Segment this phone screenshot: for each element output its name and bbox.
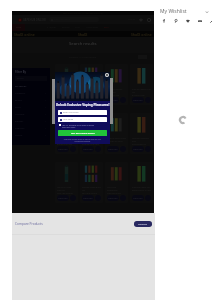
staticText: ShalX xyxy=(78,32,88,37)
staticText: Enter your email xyxy=(63,111,79,114)
button[interactable]: Cart xyxy=(147,18,151,22)
button[interactable]: More options xyxy=(204,9,209,14)
staticText: Add to cart xyxy=(58,197,68,199)
button[interactable]: Add to cart xyxy=(82,195,94,201)
staticText: Rainbow Candy Mix Flavour Bundle Pack Se… xyxy=(57,137,76,146)
button[interactable]: Add to cart xyxy=(132,97,144,103)
button[interactable]: Premium Mesh Coil Replacement 5 Pack xyxy=(130,162,153,203)
button[interactable]: My Wishlist xyxy=(160,8,209,15)
staticText: Add to cart xyxy=(108,99,118,101)
staticText: Add to cart xyxy=(133,99,143,101)
button[interactable]: Enter your email xyxy=(58,110,107,115)
button[interactable]: Compare xyxy=(134,221,152,227)
staticText: FILTER BY xyxy=(15,84,27,87)
staticText: Add to cart xyxy=(58,148,68,150)
staticText: Price xyxy=(15,105,21,108)
button[interactable]: Add to cart xyxy=(107,97,119,103)
button[interactable]: Deluxe Starter Kit With Charger And Coil… xyxy=(80,113,103,154)
button[interactable]: Smooth Classic Tobacco Vape Pod Kit xyxy=(55,64,78,105)
staticText: Flavour xyxy=(15,119,24,122)
staticText: Nicotine xyxy=(15,112,25,115)
button[interactable]: Add to cart xyxy=(82,97,94,103)
button[interactable]: Tropical Punch 50ml Shortfill E-Liquid xyxy=(105,113,128,154)
button[interactable]: Your name xyxy=(58,117,107,122)
button[interactable]: Add to cart xyxy=(57,97,69,103)
staticText: Brand xyxy=(15,98,22,101)
button[interactable]: Nexus Pro Max Vape Kit With LED Display xyxy=(55,162,78,203)
button[interactable]: Add to wishlist xyxy=(95,97,101,103)
staticText: Add to cart xyxy=(133,148,143,150)
staticText: Compare xyxy=(138,223,148,226)
button[interactable]: GET EXCLUSIVE DEALS xyxy=(58,130,107,136)
staticText: Smooth Classic Tobacco Vape Pod Kit xyxy=(57,88,76,97)
button[interactable]: Add to cart xyxy=(82,146,94,152)
staticText: I am 21+ and agree to the Terms of Servi… xyxy=(62,124,94,128)
staticText: Your name xyxy=(63,118,74,121)
button[interactable]: Add to wishlist xyxy=(70,97,76,103)
button[interactable]: Share by email xyxy=(197,18,203,24)
button[interactable]: Wishlist xyxy=(139,18,143,22)
button[interactable]: Add to cart xyxy=(57,195,69,201)
staticText: Tropical Punch 50ml Shortfill E-Liquid xyxy=(107,137,126,143)
staticText: Iced Berry Blast Disposable 5000 Puffs D… xyxy=(82,88,101,97)
button[interactable]: Rainbow Candy Mix Flavour Bundle Pack Se… xyxy=(55,113,78,154)
button[interactable]: Add to cart xyxy=(57,146,69,152)
button[interactable]: Pure Ice Mango Salt Nic E-Liquid 10ml xyxy=(130,64,153,105)
button[interactable]: Frosted Grape Burst Nic Salt 10ml Bottle xyxy=(80,162,103,203)
staticText: Unlock Exclusive Vaping Pleasures! xyxy=(55,103,110,107)
button[interactable]: Edit wishlist xyxy=(209,18,212,24)
button[interactable]: Ultra Slim Disposable Vape 600 Puffs xyxy=(105,162,128,203)
button[interactable]: Compact Pocket Vape Pen for Daily Use xyxy=(105,64,128,105)
button[interactable]: Share on Twitter xyxy=(185,18,191,24)
button[interactable]: Share on Pinterest xyxy=(173,18,179,24)
button[interactable]: Add to cart xyxy=(132,146,144,152)
staticText: Category xyxy=(15,91,26,94)
button[interactable]: Add to cart xyxy=(107,195,119,201)
staticText: Premium Mesh Coil Replacement 5 Pack xyxy=(132,186,151,192)
staticText: Capacity xyxy=(15,126,25,129)
staticText: Add to cart xyxy=(108,197,118,199)
button[interactable]: Midnight Menthol Chill Pod System Kit xyxy=(130,113,153,154)
button[interactable]: Add to cart xyxy=(132,195,144,201)
button[interactable]: Share on Facebook xyxy=(161,18,167,24)
button[interactable]: SALE xyxy=(104,26,109,29)
button[interactable]: Iced Berry Blast Disposable 5000 Puffs D… xyxy=(80,64,103,105)
button[interactable]: Add to cart xyxy=(107,146,119,152)
button[interactable]: Close xyxy=(105,73,109,77)
staticText: Search results xyxy=(69,41,97,47)
